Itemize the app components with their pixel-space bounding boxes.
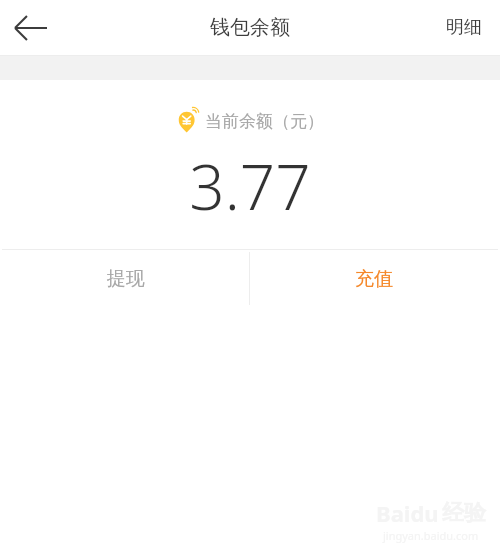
staticText: 提现 — [107, 267, 145, 291]
staticText: 3.77 — [189, 144, 311, 228]
button[interactable]: 充值 — [250, 250, 498, 307]
staticText: 明细 — [446, 16, 482, 39]
staticText: Baidu — [376, 498, 439, 528]
staticText: 充值 — [355, 267, 393, 291]
button[interactable]: 明细 — [428, 0, 500, 55]
button[interactable]: 提现 — [2, 250, 249, 307]
staticText: 经验 — [442, 499, 486, 527]
staticText: 钱包余额 — [210, 15, 290, 40]
button[interactable]: Back — [0, 0, 62, 55]
staticText: 当前余额（元） — [205, 111, 324, 132]
staticText: jingyan.baidu.com — [383, 528, 479, 543]
